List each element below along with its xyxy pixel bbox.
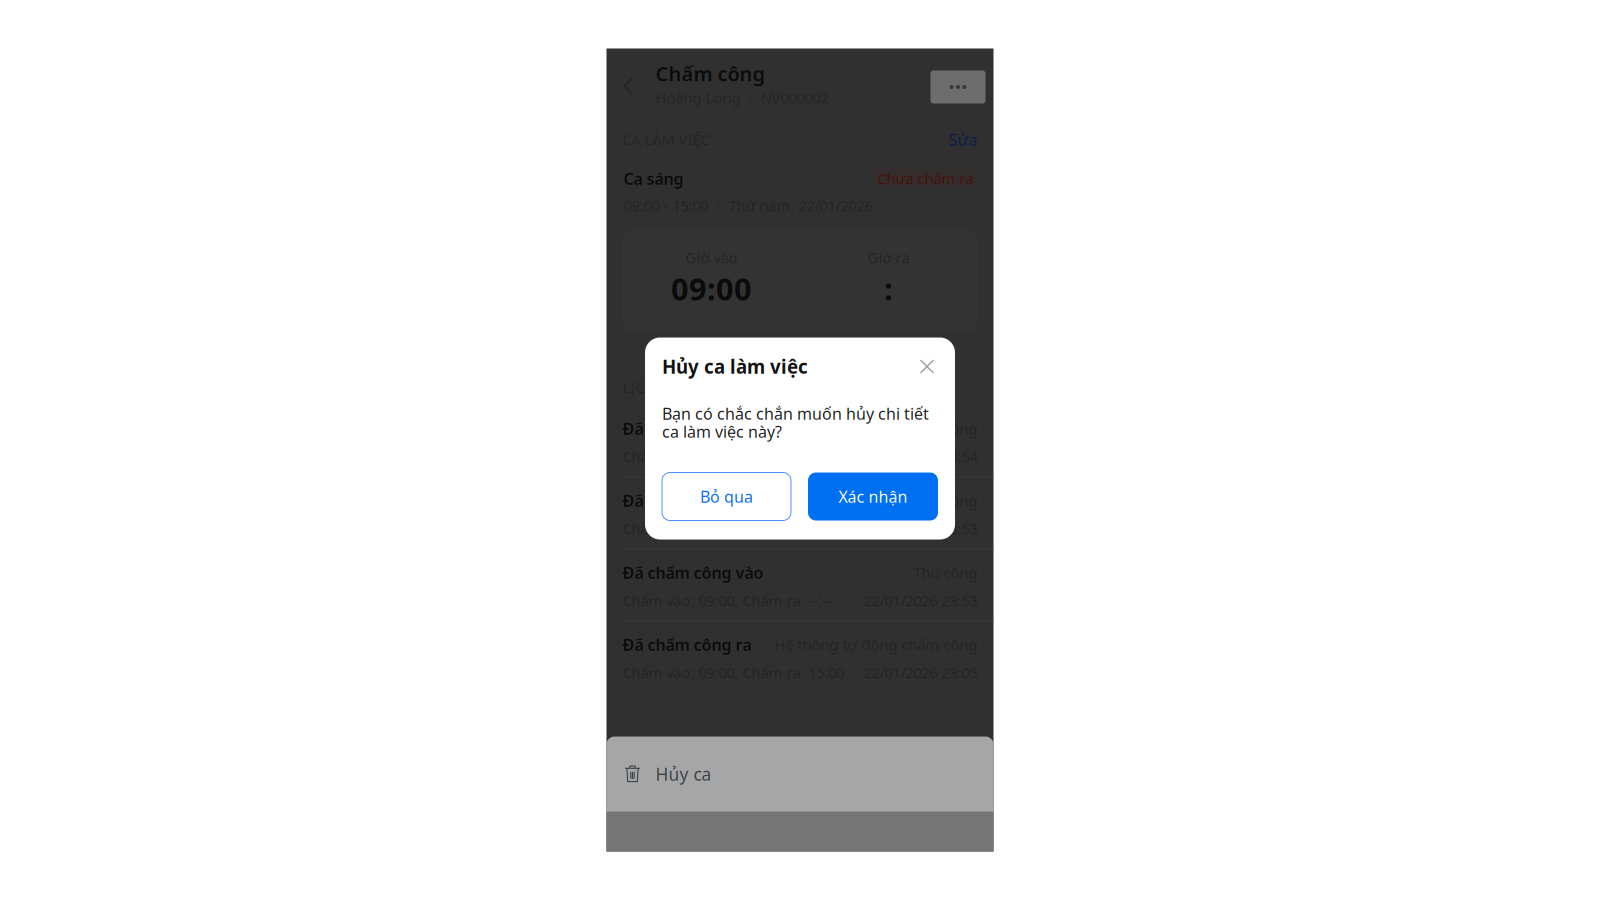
button[interactable]: Close [916, 355, 938, 377]
button[interactable]: Back [615, 48, 641, 112]
staticText: Đã chấm công vào [622, 418, 763, 439]
button[interactable]: Đã chấm công vào [606, 405, 993, 477]
staticText: Giờ ra [867, 248, 909, 267]
staticText: Hệ thống tự động chấm công [774, 635, 977, 654]
button[interactable]: Hủy ca [606, 736, 993, 811]
staticText: Hủy ca [655, 762, 711, 785]
staticText: Chấm vào: 09:00, Chấm ra: 15:00 [622, 663, 844, 682]
staticText: Ca sáng [623, 168, 683, 189]
staticText: Đã chấm công vào [622, 562, 763, 583]
button[interactable]: Sửa [948, 129, 977, 150]
staticText: Đã chấm công ra [622, 490, 751, 511]
staticText: Chấm công [655, 60, 765, 87]
staticText: Bỏ qua [700, 486, 753, 507]
staticText: ca làm việc này? [662, 421, 782, 442]
staticText: : [884, 268, 893, 309]
staticText: 22/01/2026 23:53 [863, 519, 977, 538]
staticText: Xác nhận [838, 486, 907, 507]
button[interactable]: Xác nhận [808, 472, 938, 520]
staticText: 22/01/2026 23:54 [863, 447, 977, 466]
staticText: Bạn có chắc chắn muốn hủy chi tiết [662, 403, 929, 424]
staticText: CA LÀM VIỆC [622, 130, 709, 149]
staticText: Hủy ca làm việc [662, 354, 808, 379]
staticText: LỊCH SỬ CHẤM CÔNG [622, 378, 770, 397]
staticText: Hoàng Long · NV000002 [655, 88, 828, 107]
staticText: Chưa chấm ra [877, 169, 973, 188]
button[interactable]: Đã chấm công ra [606, 621, 993, 693]
button[interactable]: More options [930, 48, 985, 112]
button[interactable]: Đã chấm công ra [606, 477, 993, 549]
staticText: Thủ công [913, 419, 977, 438]
staticText: Sửa [948, 129, 977, 150]
button[interactable]: Bỏ qua [662, 472, 791, 520]
staticText: Hệ thống tự động chấm công [774, 491, 977, 510]
staticText: Chấm vào: 09:00, Chấm ra: --:-- [622, 447, 832, 466]
staticText: Thủ công [913, 563, 977, 582]
staticText: Đã chấm công ra [622, 634, 751, 655]
staticText: 22/01/2026 23:53 [863, 591, 977, 610]
staticText: Giờ vào [685, 248, 737, 267]
staticText: 09:00 [671, 268, 752, 309]
button[interactable]: Đã chấm công vào [606, 549, 993, 621]
staticText: Chấm vào: 09:00, Chấm ra: --:-- [622, 591, 832, 610]
staticText: 09:00 - 15:00 · Thứ năm, 22/01/2026 [623, 196, 872, 215]
staticText: 22/01/2026 23:05 [863, 663, 977, 682]
staticText: Chấm vào: 09:00, Chấm ra: 15:00 [622, 519, 844, 538]
